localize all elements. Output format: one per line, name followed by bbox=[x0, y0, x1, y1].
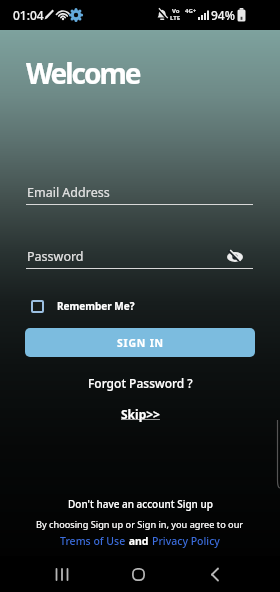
button[interactable]: Don't have an account Sign up bbox=[68, 497, 213, 511]
staticText: Password bbox=[27, 248, 84, 265]
button[interactable] bbox=[48, 560, 76, 588]
button[interactable] bbox=[124, 560, 152, 588]
button[interactable]: SIGN IN bbox=[25, 328, 255, 357]
staticText: Don't have an account Sign up bbox=[68, 497, 213, 511]
staticText: Welcome bbox=[26, 54, 140, 92]
staticText: 94% bbox=[211, 7, 235, 23]
button[interactable] bbox=[224, 248, 244, 266]
staticText: 4G+ bbox=[185, 7, 197, 15]
staticText: Remember Me? bbox=[57, 299, 135, 313]
button[interactable]: Email Address bbox=[26, 184, 253, 205]
button[interactable]: Privacy Policy bbox=[152, 534, 220, 548]
staticText: Privacy Policy bbox=[152, 534, 220, 548]
button[interactable]: Forgot Password ? bbox=[88, 375, 193, 391]
staticText: and bbox=[126, 534, 152, 548]
button[interactable]: Skip>> bbox=[121, 406, 160, 422]
staticText: LTE bbox=[170, 14, 181, 22]
button[interactable]: Trems of Use bbox=[60, 534, 126, 548]
button[interactable]: Remember Me? bbox=[31, 299, 135, 313]
staticText: SIGN IN bbox=[117, 336, 164, 350]
staticText: Vo bbox=[172, 7, 180, 15]
button[interactable]: Password bbox=[26, 248, 253, 269]
staticText: Forgot Password ? bbox=[88, 375, 193, 391]
staticText: By choosing Sign up or Sign in, you agre… bbox=[36, 518, 244, 531]
staticText: Trems of Use bbox=[60, 534, 126, 548]
button[interactable] bbox=[201, 560, 229, 588]
staticText: Email Address bbox=[27, 184, 110, 201]
staticText: 01:04 bbox=[13, 7, 44, 23]
staticText: Skip>> bbox=[121, 406, 160, 422]
